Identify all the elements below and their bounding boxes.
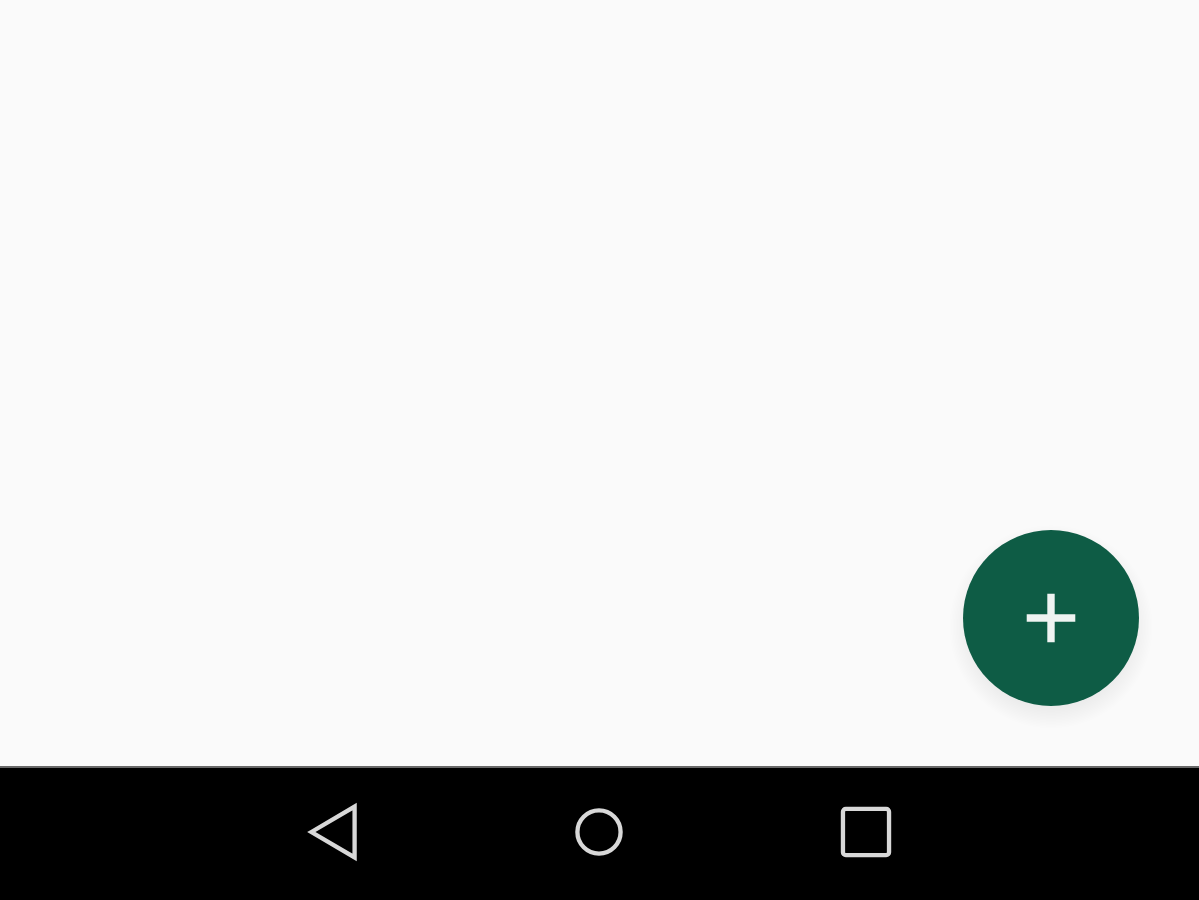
- button[interactable]: Home: [551, 784, 647, 880]
- button[interactable]: Back: [285, 784, 381, 880]
- button[interactable]: Recent apps: [818, 784, 914, 880]
- button[interactable]: Add: [963, 530, 1139, 706]
